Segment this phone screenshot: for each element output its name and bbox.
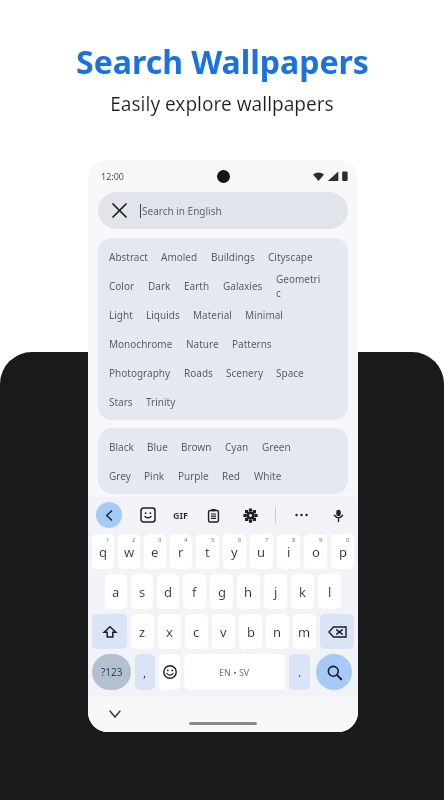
- staticText: 4: [184, 536, 188, 544]
- staticText: v: [220, 623, 227, 641]
- staticText: Geometric: [276, 272, 324, 300]
- button[interactable]: m: [293, 614, 316, 649]
- button[interactable]: Stickers: [136, 503, 160, 527]
- staticText: Scenery: [226, 366, 263, 380]
- button[interactable]: Monochrome: [109, 337, 186, 351]
- button[interactable]: Amoled: [161, 250, 211, 264]
- button[interactable]: Clear search: [98, 192, 348, 229]
- button[interactable]: v: [212, 614, 235, 649]
- button[interactable]: Backspace: [320, 614, 354, 649]
- button[interactable]: w: [118, 534, 140, 569]
- button[interactable]: Grey: [109, 469, 144, 483]
- button[interactable]: ,: [135, 654, 155, 690]
- button[interactable]: Search: [316, 654, 352, 690]
- button[interactable]: Earth: [184, 279, 223, 293]
- button[interactable]: Pink: [144, 469, 178, 483]
- button[interactable]: Galaxies: [223, 279, 276, 293]
- button[interactable]: l: [318, 574, 341, 609]
- staticText: .: [298, 664, 302, 680]
- button[interactable]: Material: [193, 308, 245, 322]
- button[interactable]: x: [158, 614, 181, 649]
- button[interactable]: s: [131, 574, 153, 609]
- button[interactable]: c: [185, 614, 208, 649]
- staticText: Purple: [178, 469, 209, 483]
- button[interactable]: Purple: [178, 469, 222, 483]
- button[interactable]: Hide keyboard: [106, 705, 124, 723]
- button[interactable]: Patterns: [232, 337, 285, 351]
- staticText: Dark: [148, 279, 171, 293]
- button[interactable]: n: [266, 614, 289, 649]
- button[interactable]: Trinity: [146, 395, 189, 409]
- button[interactable]: More options: [289, 503, 313, 527]
- button[interactable]: t: [196, 534, 219, 569]
- button[interactable]: Brown: [181, 440, 225, 454]
- button[interactable]: Red: [222, 469, 254, 483]
- button[interactable]: d: [157, 574, 179, 609]
- staticText: t: [205, 543, 210, 561]
- button[interactable]: Back: [96, 502, 122, 528]
- button[interactable]: i: [277, 534, 300, 569]
- staticText: y: [231, 543, 238, 561]
- button[interactable]: Nature: [186, 337, 232, 351]
- button[interactable]: Clipboard: [201, 503, 225, 527]
- button[interactable]: o: [304, 534, 327, 569]
- staticText: d: [164, 583, 172, 601]
- staticText: 7: [265, 536, 269, 544]
- button[interactable]: j: [264, 574, 287, 609]
- button[interactable]: q: [92, 534, 114, 569]
- button[interactable]: Liquids: [146, 308, 193, 322]
- button[interactable]: k: [291, 574, 314, 609]
- staticText: u: [257, 543, 266, 561]
- button[interactable]: Cyan: [225, 440, 262, 454]
- button[interactable]: Stars: [109, 395, 146, 409]
- button[interactable]: Minimal: [245, 308, 296, 322]
- staticText: Cityscape: [268, 250, 313, 264]
- button[interactable]: b: [239, 614, 262, 649]
- button[interactable]: Abstract: [109, 250, 161, 264]
- button[interactable]: Color: [109, 279, 148, 293]
- button[interactable]: y: [223, 534, 246, 569]
- staticText: Patterns: [232, 337, 272, 351]
- staticText: White: [254, 469, 282, 483]
- staticText: r: [178, 543, 184, 561]
- button[interactable]: White: [254, 469, 295, 483]
- button[interactable]: Space: [276, 366, 317, 380]
- button[interactable]: r: [170, 534, 192, 569]
- button[interactable]: Green: [262, 440, 304, 454]
- button[interactable]: e: [144, 534, 166, 569]
- staticText: c: [193, 623, 200, 641]
- button[interactable]: h: [237, 574, 260, 609]
- button[interactable]: Roads: [184, 366, 226, 380]
- button[interactable]: GIF: [173, 509, 188, 521]
- staticText: k: [299, 583, 306, 601]
- button[interactable]: Shift: [92, 614, 127, 649]
- button[interactable]: Cityscape: [268, 250, 326, 264]
- button[interactable]: f: [183, 574, 206, 609]
- button[interactable]: EN • SV: [184, 654, 285, 690]
- button[interactable]: Buildings: [211, 250, 268, 264]
- button[interactable]: .: [289, 654, 310, 690]
- button[interactable]: g: [210, 574, 233, 609]
- button[interactable]: Emoji: [159, 654, 180, 690]
- button[interactable]: u: [250, 534, 273, 569]
- button[interactable]: p: [331, 534, 354, 569]
- button[interactable]: Black: [109, 440, 147, 454]
- button[interactable]: a: [105, 574, 127, 609]
- button[interactable]: Scenery: [226, 366, 276, 380]
- button[interactable]: Light: [109, 308, 146, 322]
- button[interactable]: Settings: [238, 503, 262, 527]
- button[interactable]: Dark: [148, 279, 184, 293]
- button[interactable]: Voice input: [326, 503, 350, 527]
- staticText: a: [112, 583, 120, 601]
- button[interactable]: Blue: [147, 440, 181, 454]
- staticText: Liquids: [146, 308, 180, 322]
- button[interactable]: Photography: [109, 366, 184, 380]
- staticText: Brown: [181, 440, 212, 454]
- button[interactable]: z: [131, 614, 154, 649]
- button[interactable]: Geometric: [276, 272, 337, 300]
- staticText: Light: [109, 308, 133, 322]
- staticText: x: [166, 623, 173, 641]
- button[interactable]: ?123: [92, 654, 131, 690]
- staticText: Roads: [184, 366, 213, 380]
- staticText: Blue: [147, 440, 168, 454]
